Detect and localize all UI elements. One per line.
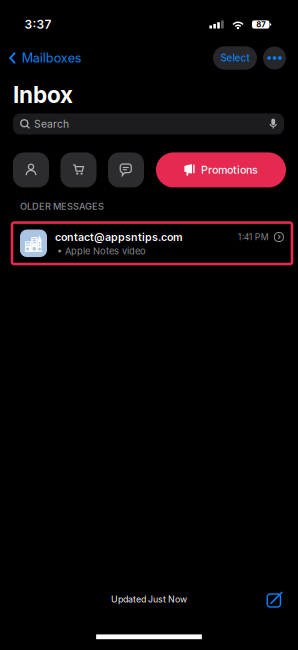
staticText: Search <box>34 118 69 130</box>
button[interactable]: More options <box>263 46 286 69</box>
staticText: contact@appsntips.com <box>55 231 183 243</box>
button[interactable]: Compose <box>263 588 287 610</box>
button[interactable]: contact@appsntips.com <box>12 223 292 264</box>
button[interactable]: Search <box>13 113 284 134</box>
staticText: Updated Just Now <box>111 594 187 605</box>
button[interactable]: Select <box>213 46 257 70</box>
staticText: OLDER MESSAGES <box>20 201 104 212</box>
button[interactable]: Promotions <box>156 152 286 187</box>
staticText: Promotions <box>201 163 258 176</box>
button[interactable]: Updates <box>108 152 144 187</box>
staticText: Select <box>220 52 249 64</box>
staticText: 3:37 <box>24 17 51 32</box>
staticText: 87 <box>256 20 265 29</box>
button[interactable]: Primary <box>13 152 49 187</box>
button[interactable]: Mailboxes <box>0 45 82 71</box>
staticText: Mailboxes <box>22 50 82 66</box>
button[interactable]: Transactions <box>60 152 96 187</box>
staticText: • Apple Notes video <box>57 245 146 257</box>
staticText: 1:41 PM <box>238 232 269 242</box>
staticText: Inbox <box>13 81 73 108</box>
